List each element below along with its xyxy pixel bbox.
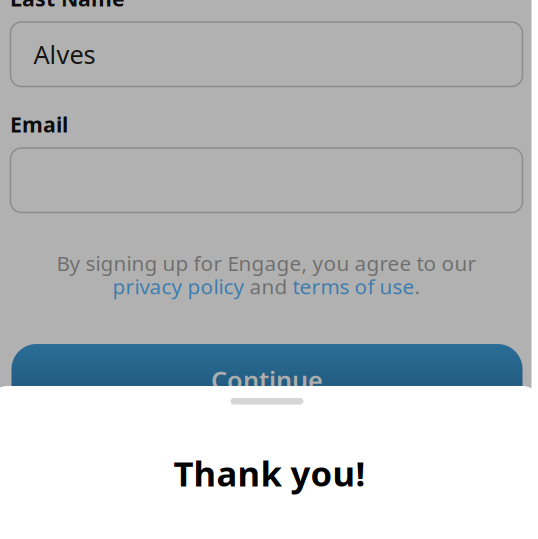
staticText: Email — [10, 110, 68, 138]
button[interactable]: terms of use — [292, 272, 414, 300]
button[interactable]: Continue — [11, 344, 522, 420]
staticText: Thank you! — [173, 450, 365, 496]
button[interactable] — [10, 148, 522, 212]
staticText: . — [414, 272, 420, 300]
staticText: privacy policy — [112, 272, 244, 300]
staticText: Last Name — [10, 0, 125, 12]
button[interactable]: privacy policy — [112, 272, 244, 300]
staticText: terms of use — [292, 272, 414, 300]
staticText: Continue — [211, 363, 323, 397]
staticText: By signing up for Engage, you agree to o… — [56, 249, 476, 277]
staticText: Alves — [33, 37, 95, 71]
staticText: and — [244, 272, 292, 300]
button[interactable]: Alves — [10, 22, 522, 86]
